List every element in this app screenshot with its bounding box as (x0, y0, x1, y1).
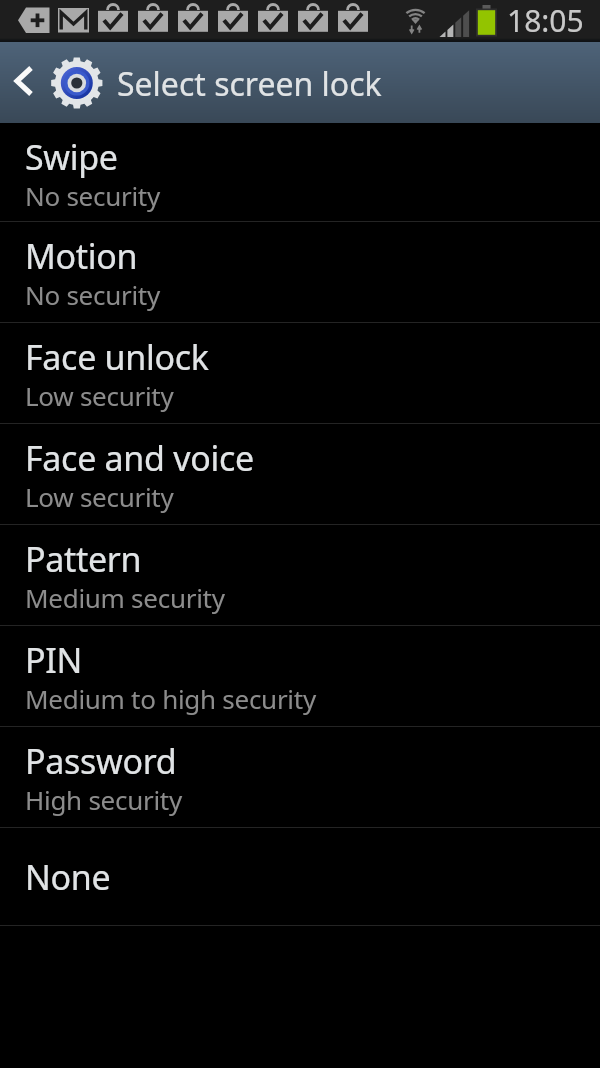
staticText: Face and voice (25, 435, 254, 481)
button[interactable]: Navigate up (0, 42, 46, 123)
staticText: Select screen lock (117, 62, 382, 106)
staticText: Password (25, 738, 177, 784)
button[interactable]: Motion (0, 222, 600, 323)
button[interactable]: Pattern (0, 525, 600, 626)
staticText: None (25, 854, 111, 900)
staticText: Low security (25, 378, 174, 413)
staticText: Medium to high security (25, 681, 316, 716)
button[interactable]: PIN (0, 626, 600, 727)
staticText: Medium security (25, 580, 225, 615)
button[interactable]: None (0, 828, 600, 926)
button[interactable]: Password (0, 727, 600, 828)
staticText: Pattern (25, 536, 142, 582)
staticText: PIN (25, 637, 83, 683)
button[interactable]: Swipe (0, 123, 600, 222)
staticText: Face unlock (25, 334, 209, 380)
staticText: No security (25, 178, 160, 213)
staticText: 18:05 (507, 0, 584, 41)
staticText: No security (25, 277, 160, 312)
staticText: Swipe (25, 134, 118, 180)
button[interactable]: Face unlock (0, 323, 600, 424)
staticText: Motion (25, 233, 138, 279)
staticText: Low security (25, 479, 174, 514)
button[interactable]: Face and voice (0, 424, 600, 525)
staticText: High security (25, 782, 182, 817)
